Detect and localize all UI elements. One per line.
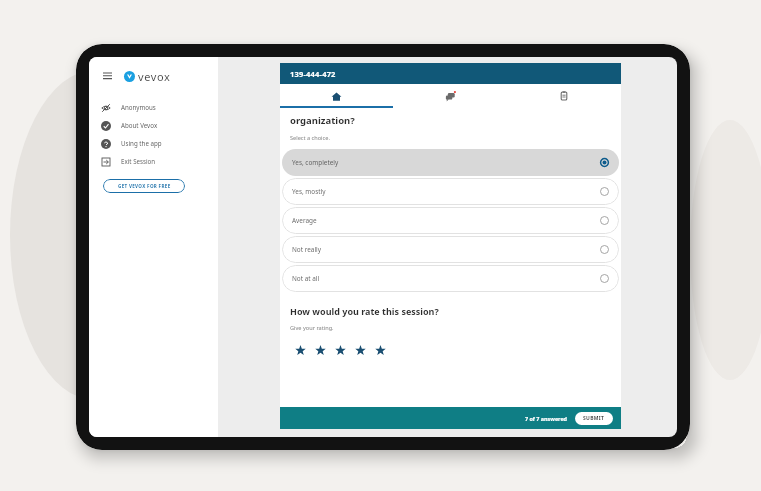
button[interactable]: Rate 3 stars xyxy=(330,340,350,360)
staticText: Exit Session xyxy=(121,157,156,165)
staticText: Not at all xyxy=(292,274,320,283)
button[interactable]: About Vevox xyxy=(89,116,218,134)
button[interactable]: Menu xyxy=(100,69,114,83)
staticText: About Vevox xyxy=(121,121,158,129)
button[interactable]: Rate 1 stars xyxy=(290,340,310,360)
button[interactable]: Rate 5 stars xyxy=(370,340,390,360)
button[interactable]: Yes, mostly xyxy=(282,178,619,205)
staticText: vevox xyxy=(138,69,171,84)
staticText: 139-444-472 xyxy=(290,69,336,79)
button[interactable]: Average xyxy=(282,207,619,234)
button[interactable]: Using the app xyxy=(89,134,218,152)
button[interactable]: Messages xyxy=(393,84,507,108)
staticText: Using the app xyxy=(121,139,162,147)
button[interactable]: Rate 2 stars xyxy=(310,340,330,360)
staticText: Not really xyxy=(292,245,321,254)
staticText: Average xyxy=(292,216,317,225)
staticText: Select a choice. xyxy=(290,134,330,142)
staticText: Yes, mostly xyxy=(292,187,326,196)
staticText: GET VEVOX FOR FREE xyxy=(118,183,171,189)
button[interactable]: Yes, completely xyxy=(282,149,619,176)
staticText: 7 of 7 answered xyxy=(525,415,568,422)
staticText: Give your rating. xyxy=(290,324,334,332)
button[interactable]: Anonymous xyxy=(89,98,218,116)
button[interactable]: Not really xyxy=(282,236,619,263)
button[interactable]: Rate 4 stars xyxy=(350,340,370,360)
button[interactable]: SUBMIT xyxy=(575,412,613,425)
button[interactable]: GET VEVOX FOR FREE xyxy=(103,179,185,193)
button[interactable]: Surveys xyxy=(507,84,621,108)
staticText: Yes, completely xyxy=(292,158,339,167)
button[interactable]: Exit Session xyxy=(89,152,218,170)
button[interactable]: Home xyxy=(280,84,393,108)
staticText: Anonymous xyxy=(121,103,156,111)
staticText: SUBMIT xyxy=(583,415,605,422)
button[interactable]: Not at all xyxy=(282,265,619,292)
staticText: How would you rate this session? xyxy=(290,305,439,317)
staticText: organization? xyxy=(290,114,355,127)
